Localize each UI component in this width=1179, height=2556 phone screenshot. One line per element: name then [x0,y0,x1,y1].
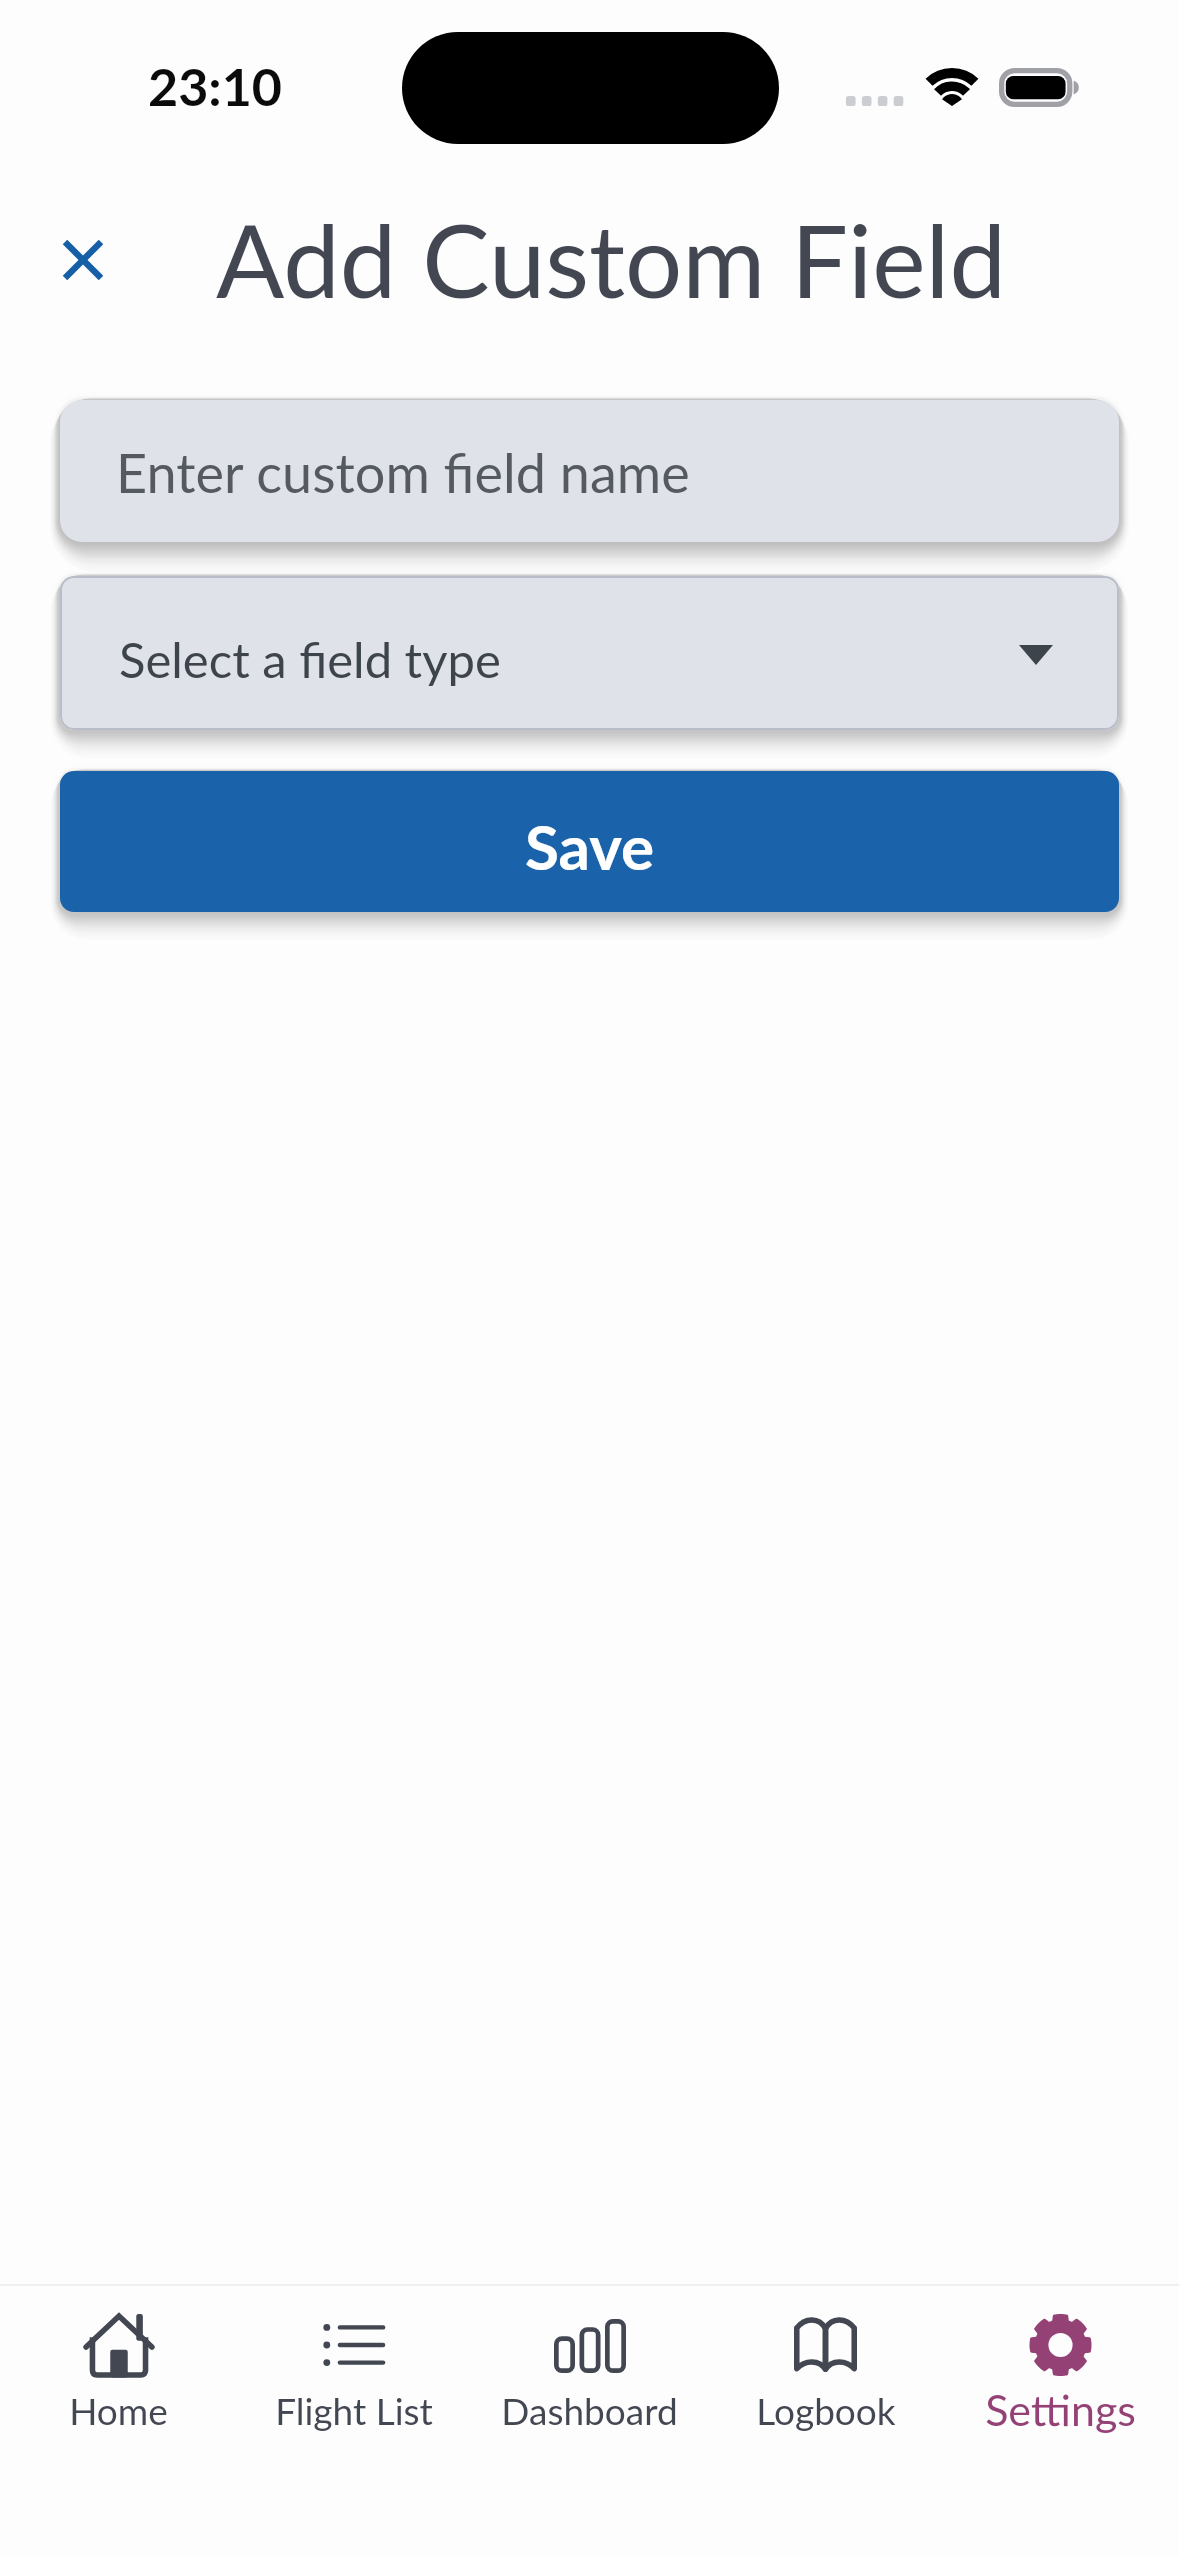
staticText: Flight List [275,2388,433,2432]
staticText: Settings [985,2384,1136,2436]
staticText: Home [69,2388,168,2432]
staticText: Add Custom Field [216,198,1006,319]
button[interactable]: Enter custom field name [60,400,1119,542]
button[interactable]: Logbook [708,2286,943,2556]
staticText: 23:10 [148,55,283,117]
button[interactable]: Home [1,2286,236,2556]
staticText: Dashboard [501,2388,678,2432]
button[interactable]: Close [38,215,128,305]
staticText: Select a field type [119,630,501,689]
button[interactable]: Settings [943,2286,1178,2556]
staticText: Logbook [756,2388,896,2432]
staticText: Enter custom field name [116,440,690,505]
staticText: Save [525,809,655,883]
button[interactable]: Select a field type [60,576,1119,730]
button[interactable]: Save [60,771,1119,912]
button[interactable]: Flight List [236,2286,471,2556]
button[interactable]: Dashboard [472,2286,707,2556]
